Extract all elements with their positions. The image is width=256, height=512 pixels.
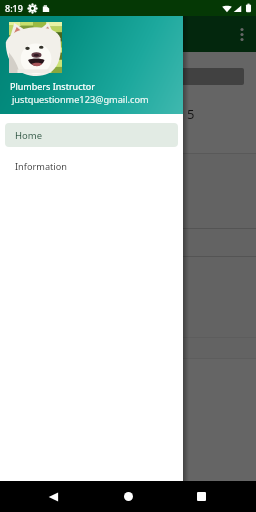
button[interactable]: Home	[5, 123, 178, 147]
staticText: 8:19	[5, 2, 23, 14]
button[interactable]: Home	[105, 481, 151, 512]
button[interactable]: Back	[31, 481, 76, 512]
staticText: Information	[15, 160, 67, 173]
button[interactable]: Information	[5, 154, 178, 178]
button[interactable]: Recent apps	[179, 481, 224, 512]
staticText: Plumbers Instructor	[10, 80, 95, 92]
staticText: Home	[15, 129, 43, 142]
staticText: justquestionme123@gmail.com	[12, 93, 149, 106]
staticText: 234	[8, 105, 31, 123]
staticText: 5	[187, 105, 195, 123]
button[interactable]: More options	[230, 22, 254, 46]
